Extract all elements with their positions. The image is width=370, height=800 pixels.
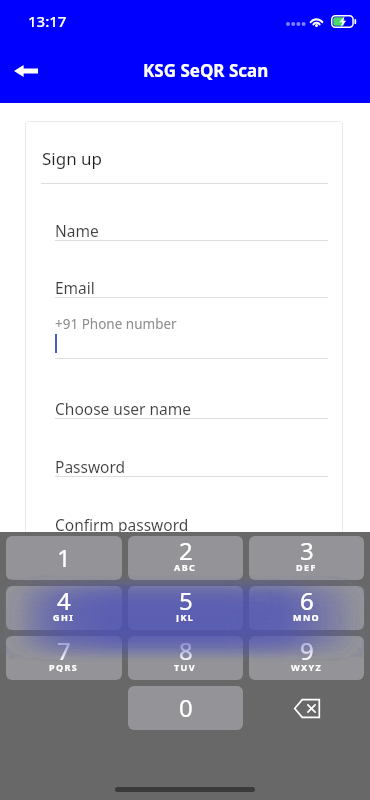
staticText: 1 — [57, 541, 71, 574]
staticText: +91 Phone number — [55, 315, 177, 333]
staticText: Email — [55, 277, 95, 298]
staticText: 13:17 — [28, 11, 67, 31]
button[interactable]: 2 — [128, 536, 243, 580]
staticText: Sign up — [42, 147, 103, 170]
button[interactable]: 1 — [6, 536, 122, 580]
staticText: WXYZ — [291, 661, 323, 672]
staticText: JKL — [176, 611, 195, 622]
staticText: Password — [55, 456, 126, 477]
staticText: 7 — [57, 636, 71, 667]
staticText: 4 — [57, 586, 71, 617]
staticText: KSG SeQR Scan — [143, 59, 269, 82]
staticText: ABC — [174, 561, 197, 572]
staticText: Choose user name — [55, 398, 192, 419]
button[interactable]: 6 — [249, 586, 364, 630]
staticText: MNO — [293, 611, 321, 622]
staticText: PQRS — [49, 661, 79, 672]
button[interactable]: 3 — [249, 536, 364, 580]
staticText: 8 — [179, 636, 193, 667]
staticText: 6 — [300, 586, 314, 617]
button[interactable]: 9 — [249, 636, 364, 680]
staticText: TUV — [174, 661, 197, 672]
staticText: GHI — [53, 611, 75, 622]
staticText: GHI — [53, 611, 75, 622]
staticText: DEF — [296, 561, 317, 572]
staticText: 5 — [179, 586, 193, 617]
staticText: 4 — [57, 584, 71, 617]
staticText: 6 — [300, 584, 314, 617]
button[interactable]: 7 — [6, 636, 122, 680]
button[interactable]: 0 — [128, 686, 243, 730]
staticText: Name — [55, 220, 99, 241]
staticText: JKL — [176, 611, 195, 622]
button[interactable]: 4 — [6, 586, 122, 630]
staticText: 3 — [300, 536, 314, 567]
staticText: 2 — [179, 536, 193, 567]
staticText: 9 — [300, 636, 314, 667]
button[interactable]: Back — [2, 50, 50, 98]
button[interactable]: Backspace — [249, 686, 364, 730]
staticText: MNO — [293, 611, 321, 622]
staticText: 5 — [179, 584, 193, 617]
staticText: 0 — [179, 691, 193, 724]
button[interactable]: 8 — [128, 636, 243, 680]
staticText: Confirm password — [55, 514, 189, 535]
button[interactable]: 5 — [128, 586, 243, 630]
